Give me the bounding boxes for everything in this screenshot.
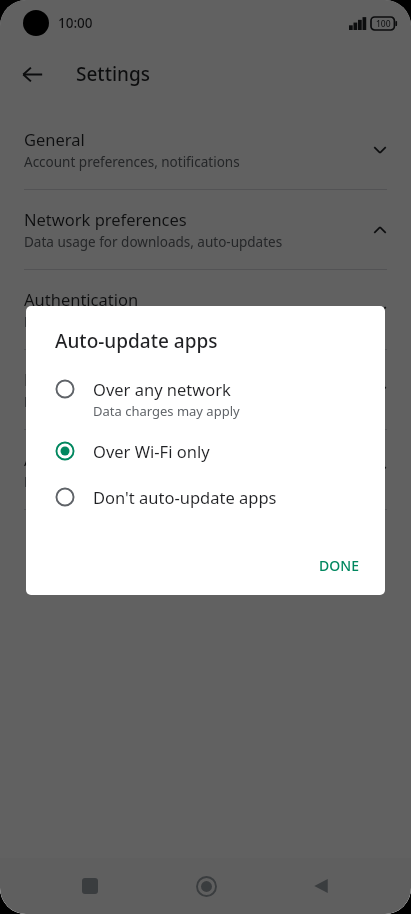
staticText: Family (24, 368, 75, 390)
button[interactable]: Home (180, 860, 232, 912)
staticText: General (24, 128, 85, 150)
button[interactable]: General (0, 110, 411, 190)
button[interactable]: Back (10, 52, 54, 96)
button[interactable]: DONE (309, 548, 369, 583)
staticText: About (24, 448, 71, 470)
staticText: Parental control, parent guide (24, 393, 214, 411)
button[interactable]: Over any network (26, 372, 385, 426)
button[interactable]: Don't auto-update apps (26, 480, 385, 514)
button[interactable]: Family (0, 350, 411, 430)
button[interactable]: Over Wi-Fi only (26, 434, 385, 468)
button[interactable]: Authentication (0, 270, 411, 350)
staticText: Account preferences, notifications (24, 153, 240, 171)
button[interactable]: Network preferences (0, 190, 411, 270)
staticText: Play Store, build version, device certif… (24, 473, 302, 491)
staticText: DONE (319, 556, 359, 575)
staticText: Settings (76, 61, 150, 87)
staticText: Fingerprint, purchase authentication (24, 313, 257, 331)
staticText: 10:00 (58, 14, 93, 32)
staticText: 100 (376, 18, 391, 30)
staticText: Don't auto-update apps (93, 486, 277, 508)
button[interactable]: About (0, 430, 411, 510)
staticText: Auto-update apps (55, 328, 218, 354)
staticText: Over Wi-Fi only (93, 440, 210, 462)
staticText: Network preferences (24, 208, 187, 230)
button[interactable]: Recents (64, 860, 116, 912)
button[interactable]: Back (295, 860, 347, 912)
staticText: Authentication (24, 288, 139, 310)
staticText: Data usage for downloads, auto-updates (24, 233, 283, 251)
staticText: Data charges may apply (93, 402, 240, 420)
staticText: Over any network (93, 378, 231, 400)
